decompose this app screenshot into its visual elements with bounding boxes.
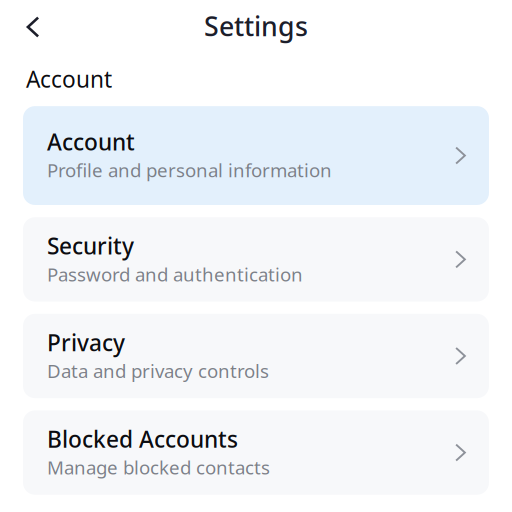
button[interactable]: Back [10,4,54,48]
staticText: Profile and personal information [47,158,332,182]
button[interactable]: Blocked Accounts [23,410,489,495]
button[interactable]: Privacy [23,314,489,398]
button[interactable]: Account [23,106,489,205]
staticText: Manage blocked contacts [47,455,270,480]
staticText: Privacy [47,327,125,357]
staticText: Settings [204,8,308,44]
staticText: Password and authentication [47,262,303,287]
staticText: Blocked Accounts [47,424,238,454]
staticText: Account [26,64,112,94]
staticText: Account [47,127,135,157]
button[interactable]: Security [23,217,489,302]
staticText: Data and privacy controls [47,358,269,383]
staticText: Security [47,231,134,261]
